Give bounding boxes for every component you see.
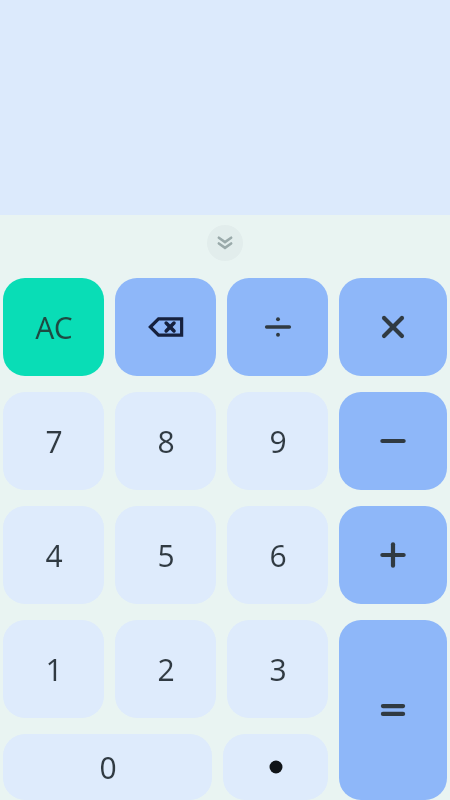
button[interactable]: 3 <box>227 620 328 718</box>
button[interactable]: Subtract <box>339 392 447 490</box>
staticText: 2 <box>157 649 175 690</box>
button[interactable]: 0 <box>3 734 212 800</box>
button[interactable]: Backspace <box>115 278 216 376</box>
staticText: 5 <box>157 535 175 576</box>
staticText: 3 <box>269 649 287 690</box>
button[interactable]: 7 <box>3 392 104 490</box>
button[interactable]: 6 <box>227 506 328 604</box>
button[interactable]: Add <box>339 506 447 604</box>
button[interactable]: Collapse keypad <box>207 225 243 261</box>
button[interactable]: Divide <box>227 278 328 376</box>
button[interactable]: Multiply <box>339 278 447 376</box>
button[interactable]: AC <box>3 278 104 376</box>
staticText: 8 <box>157 421 175 462</box>
button[interactable]: Equals <box>339 620 447 800</box>
staticText: 1 <box>45 649 63 690</box>
staticText: 7 <box>45 421 63 462</box>
staticText: 0 <box>99 747 117 788</box>
button[interactable]: 5 <box>115 506 216 604</box>
staticText: 6 <box>269 535 287 576</box>
button[interactable]: 8 <box>115 392 216 490</box>
staticText: 9 <box>269 421 287 462</box>
button[interactable]: Decimal point <box>223 734 328 800</box>
button[interactable]: 2 <box>115 620 216 718</box>
staticText: 4 <box>45 535 63 576</box>
staticText: AC <box>35 307 73 348</box>
button[interactable]: 1 <box>3 620 104 718</box>
button[interactable]: 4 <box>3 506 104 604</box>
button[interactable]: 9 <box>227 392 328 490</box>
